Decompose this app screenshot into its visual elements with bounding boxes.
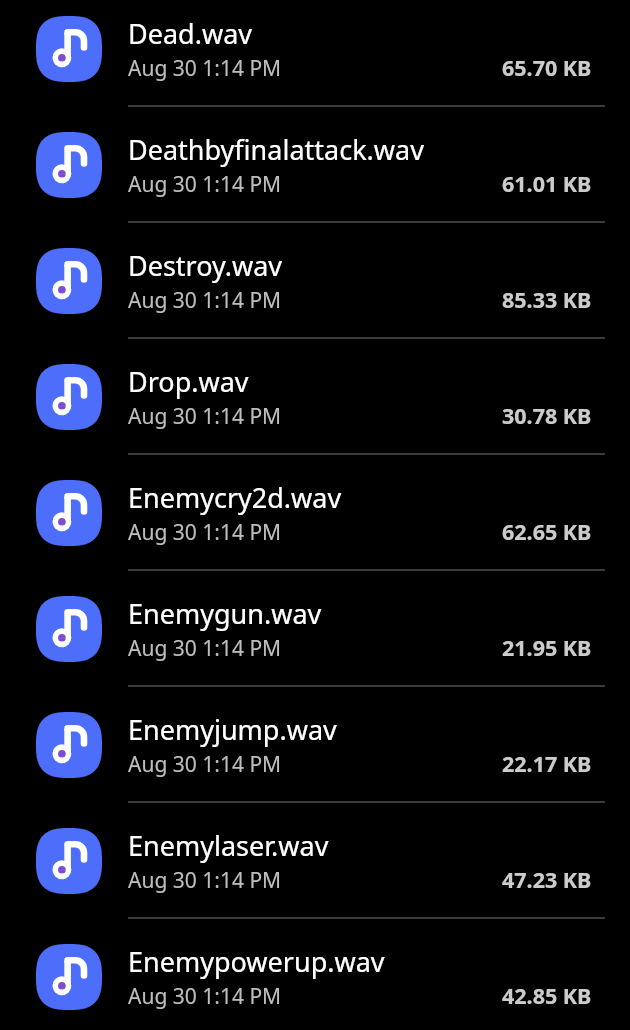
button[interactable]: Audio file — [0, 107, 630, 223]
staticText: Enemygun.wav — [128, 595, 322, 632]
other: Audio file — [36, 132, 102, 198]
staticText: Enemyjump.wav — [128, 711, 337, 748]
staticText: Aug 30 1:14 PM — [128, 286, 282, 315]
other: Audio file — [36, 16, 102, 82]
staticText: Deathbyfinalattack.wav — [128, 131, 424, 168]
staticText: Aug 30 1:14 PM — [128, 402, 282, 431]
staticText: 85.33 KB — [502, 285, 592, 314]
other: Audio file — [36, 944, 102, 1010]
other: Audio file — [36, 712, 102, 778]
staticText: Aug 30 1:14 PM — [128, 170, 282, 199]
button[interactable]: Audio file — [0, 803, 630, 919]
staticText: Aug 30 1:14 PM — [128, 634, 282, 663]
button[interactable]: Audio file — [0, 571, 630, 687]
other: Audio file — [36, 248, 102, 314]
other: Audio file — [36, 828, 102, 894]
staticText: Enemypowerup.wav — [128, 943, 385, 980]
staticText: 65.70 KB — [502, 53, 592, 82]
button[interactable]: Audio file — [0, 0, 630, 107]
staticText: Destroy.wav — [128, 247, 283, 284]
staticText: 30.78 KB — [502, 401, 592, 430]
staticText: 62.65 KB — [502, 517, 592, 546]
staticText: 61.01 KB — [502, 169, 592, 198]
other: Audio file — [36, 596, 102, 662]
button[interactable]: Audio file — [0, 455, 630, 571]
staticText: Aug 30 1:14 PM — [128, 54, 282, 83]
button[interactable]: Audio file — [0, 223, 630, 339]
other: Audio file — [36, 364, 102, 430]
button[interactable]: Audio file — [0, 687, 630, 803]
staticText: Aug 30 1:14 PM — [128, 518, 282, 547]
button[interactable]: Audio file — [0, 919, 630, 1030]
button[interactable]: Audio file — [0, 339, 630, 455]
staticText: 42.85 KB — [502, 981, 592, 1010]
staticText: Enemylaser.wav — [128, 827, 329, 864]
staticText: 22.17 KB — [502, 749, 592, 778]
staticText: Aug 30 1:14 PM — [128, 750, 282, 779]
staticText: Enemycry2d.wav — [128, 479, 342, 516]
other: Audio file — [36, 480, 102, 546]
staticText: 21.95 KB — [502, 633, 592, 662]
staticText: 47.23 KB — [502, 865, 592, 894]
staticText: Drop.wav — [128, 363, 249, 400]
staticText: Aug 30 1:14 PM — [128, 982, 282, 1011]
staticText: Dead.wav — [128, 15, 253, 52]
staticText: Aug 30 1:14 PM — [128, 866, 282, 895]
